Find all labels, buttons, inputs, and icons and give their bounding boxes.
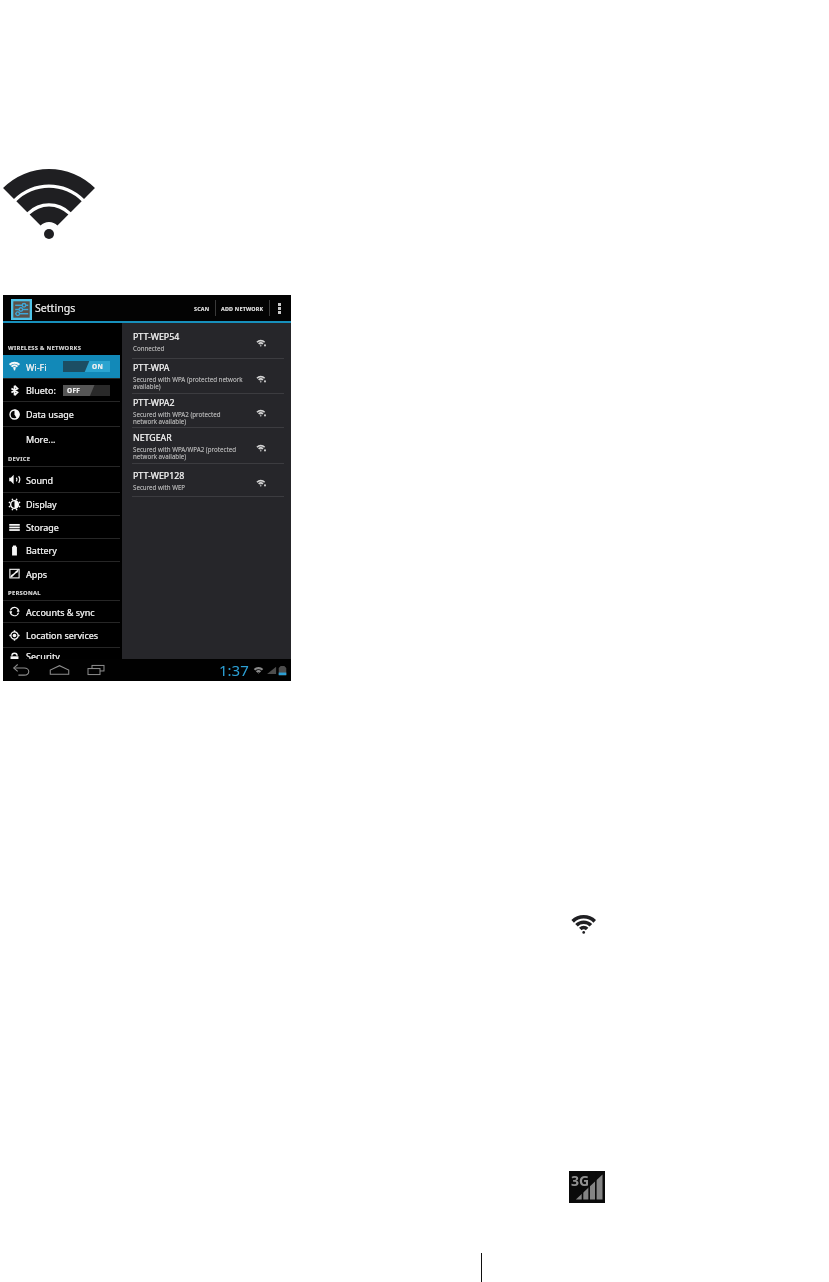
button[interactable]: ADD NETWORK [216, 295, 269, 321]
button[interactable]: Back [11, 659, 33, 680]
staticText: Secured with WPA (protected network avai… [133, 375, 243, 391]
staticText: Display [26, 498, 57, 510]
button[interactable]: Accounts & sync [3, 601, 120, 622]
staticText: Security [26, 650, 60, 661]
button[interactable]: On [63, 361, 110, 372]
button[interactable]: Location services [3, 623, 120, 647]
staticText: WIRELESS & NETWORKS [8, 344, 82, 352]
button[interactable]: Display [3, 493, 120, 515]
button[interactable]: More... [3, 427, 120, 450]
button[interactable]: Data usage [3, 402, 120, 426]
staticText: More... [26, 433, 56, 445]
staticText: 1:37 [219, 660, 249, 680]
staticText: Apps [26, 568, 48, 580]
button[interactable]: Recent apps [84, 659, 108, 680]
button[interactable]: PTT-WPA [122, 359, 291, 394]
button[interactable]: Battery [3, 539, 120, 561]
staticText: Secured with WPA/WPA2 (protected network… [133, 445, 236, 461]
button[interactable]: PTT-WPA2 [122, 394, 291, 428]
staticText: Location services [26, 629, 99, 641]
staticText: OFF [67, 386, 81, 395]
staticText: Secured with WPA2 (protected network ava… [133, 410, 221, 426]
staticText: Blueto: [26, 384, 56, 396]
staticText: Wi-Fi [26, 361, 47, 373]
button[interactable]: Wi-Fi [3, 355, 120, 378]
button[interactable]: Settings app [11, 299, 32, 320]
staticText: SCAN [194, 305, 210, 312]
staticText: Connected [133, 344, 165, 352]
button[interactable]: PTT-WEP128 [122, 464, 291, 497]
staticText: PTT-WPA [133, 362, 170, 374]
button[interactable]: Apps [3, 562, 120, 585]
staticText: NETGEAR [133, 432, 172, 444]
staticText: Storage [26, 521, 59, 533]
staticText: Settings [35, 301, 76, 315]
button[interactable]: Blueto: [3, 379, 120, 401]
button[interactable]: PTT-WEP54 [122, 323, 291, 359]
button[interactable]: Storage [3, 516, 120, 538]
button[interactable]: More options [270, 295, 289, 321]
button[interactable]: Off [63, 385, 110, 396]
other: 3G signal strength [569, 1171, 605, 1203]
button[interactable]: Sound [3, 467, 120, 492]
staticText: ON [92, 362, 104, 371]
button[interactable]: Home [47, 659, 71, 680]
staticText: Data usage [26, 408, 74, 420]
staticText: 3G [571, 1171, 590, 1190]
staticText: Secured with WEP [133, 483, 186, 491]
staticText: Sound [26, 474, 54, 486]
button[interactable]: Security [3, 648, 120, 659]
staticText: PTT-WEP54 [133, 331, 180, 343]
staticText: ADD NETWORK [221, 305, 264, 312]
button[interactable]: NETGEAR [122, 428, 291, 464]
staticText: DEVICE [8, 455, 31, 463]
staticText: PTT-WEP128 [133, 470, 185, 482]
button[interactable]: SCAN [189, 295, 215, 321]
staticText: PTT-WPA2 [133, 397, 175, 409]
staticText: Accounts & sync [26, 606, 95, 618]
staticText: PERSONAL [8, 589, 41, 597]
staticText: Battery [26, 544, 57, 556]
